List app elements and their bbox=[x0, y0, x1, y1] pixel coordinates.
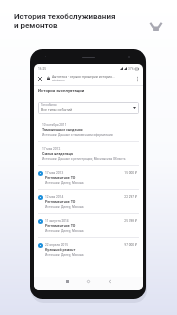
button[interactable]: 12 мая 2014 bbox=[38, 190, 139, 213]
staticText: 37% bbox=[128, 67, 134, 71]
staticText: Таможенные сведения bbox=[42, 128, 83, 132]
button[interactable]: Back bbox=[106, 278, 113, 285]
staticText: Источник: Дилер, Москва bbox=[45, 253, 84, 257]
staticText: Автотека - сервис проверки историк... bbox=[52, 75, 115, 79]
staticText: 17 мая 2013 bbox=[45, 171, 64, 175]
staticText: 97 000 ₽ bbox=[124, 243, 137, 247]
button[interactable]: Close bbox=[36, 75, 44, 83]
staticText: 25 398 ₽ bbox=[124, 219, 137, 223]
staticText: 16:25 bbox=[38, 67, 47, 71]
other: Avtoteka logo bbox=[149, 18, 163, 32]
staticText: 17 мая 2012 bbox=[42, 147, 61, 151]
staticText: 15 000 ₽ bbox=[124, 171, 137, 175]
staticText: avtoteka.ru bbox=[52, 79, 65, 82]
staticText: Смена владельца bbox=[42, 152, 74, 156]
button[interactable]: Recents bbox=[64, 278, 71, 285]
staticText: Источник: Данные о регистрации, Московск… bbox=[42, 157, 126, 161]
staticText: Регламентное ТО bbox=[45, 176, 76, 180]
staticText: Регламентное ТО bbox=[45, 224, 76, 228]
staticText: Регламентное ТО bbox=[45, 200, 76, 204]
staticText: История эксплуатации bbox=[38, 88, 85, 93]
button[interactable]: Тип события bbox=[38, 102, 139, 114]
button[interactable]: Home bbox=[85, 278, 92, 285]
staticText: 11 августа 2014 bbox=[45, 219, 69, 223]
button[interactable]: More options bbox=[133, 75, 141, 83]
staticText: 10 октября 2011 bbox=[42, 123, 67, 127]
staticText: и ремонтов bbox=[14, 21, 58, 30]
button[interactable]: 17 мая 2012 bbox=[38, 142, 139, 165]
staticText: 22 апреля 2015 bbox=[45, 243, 68, 247]
button[interactable]: 17 мая 2013 bbox=[38, 166, 139, 189]
staticText: 22 297 ₽ bbox=[124, 195, 137, 199]
staticText: Все типы событий bbox=[41, 108, 73, 112]
button[interactable]: 10 октября 2011 bbox=[38, 118, 139, 141]
staticText: Источник: Дилер, Москва bbox=[45, 181, 84, 185]
staticText: История техобслуживания bbox=[14, 12, 116, 21]
button[interactable]: 11 августа 2014 bbox=[38, 214, 139, 237]
button[interactable]: 22 апреля 2015 bbox=[38, 238, 139, 261]
staticText: 12 мая 2014 bbox=[45, 195, 64, 199]
staticText: Кузовной ремонт bbox=[45, 248, 76, 252]
staticText: Тип события bbox=[41, 104, 57, 107]
staticText: Источник: Дилер, Москва bbox=[45, 205, 84, 209]
staticText: Источник: Данные о таможенном оформлении bbox=[42, 133, 113, 137]
staticText: Источник: Дилер, Москва bbox=[45, 229, 84, 233]
